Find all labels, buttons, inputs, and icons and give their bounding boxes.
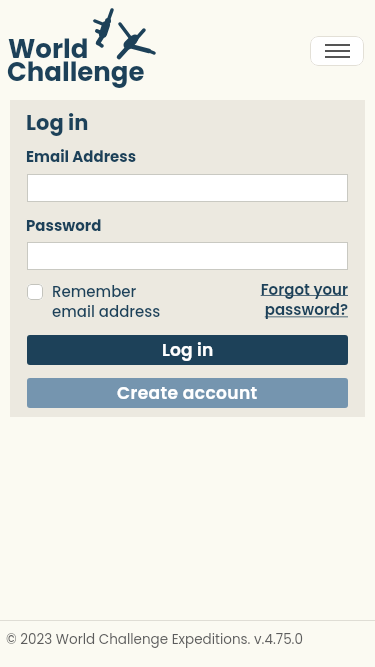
staticText: Email Address <box>26 146 137 167</box>
staticText: Challenge <box>7 54 145 90</box>
button[interactable]: Log in <box>27 335 348 365</box>
button[interactable] <box>27 242 348 270</box>
button[interactable]: Create account <box>27 378 348 408</box>
button[interactable] <box>27 284 43 300</box>
button[interactable] <box>27 174 348 202</box>
staticText: Log in <box>162 338 214 362</box>
staticText: Password <box>26 215 102 236</box>
button[interactable] <box>310 36 364 66</box>
button[interactable]: Forgot your password? <box>0 0 100 42</box>
staticText: World <box>8 31 89 67</box>
staticText: Create account <box>117 381 258 405</box>
staticText: Log in <box>26 108 89 137</box>
staticText: Remember email address <box>52 281 161 323</box>
staticText: © 2023 World Challenge Expeditions. v.4.… <box>6 630 303 649</box>
